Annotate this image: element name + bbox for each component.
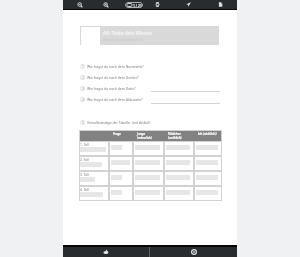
staticText: 4. Fall	[80, 187, 89, 191]
staticText: (männlich)	[137, 136, 152, 140]
staticText: Vervollständige der Tabelle. (mit Artike…	[87, 120, 151, 125]
staticText: Wie fragst du nach dem Nominativ?	[87, 64, 144, 69]
button[interactable]: Download	[63, 247, 149, 257]
button[interactable]: Page number	[123, 0, 145, 9]
staticText: 2	[82, 76, 84, 80]
staticText: 3. Fall	[80, 172, 89, 176]
button[interactable]: Share	[182, 0, 195, 9]
staticText: Wie fragst du nach dem Genitiv?	[87, 75, 139, 80]
staticText: 2. Fall	[80, 157, 89, 161]
staticText: Mädchen	[168, 132, 182, 136]
staticText: (weiblich)	[168, 136, 182, 140]
staticText: Deutsch Sprachwissen 5 / 6	[103, 38, 143, 42]
staticText: Wie fragst du nach dem Akkusativ?	[87, 97, 143, 102]
staticText: Frage	[113, 132, 121, 136]
staticText: Junge	[137, 132, 146, 136]
staticText: 1 / 25	[133, 3, 142, 8]
staticText: 4	[82, 98, 84, 102]
button[interactable]: Print	[151, 0, 164, 9]
button[interactable]: Info	[150, 247, 237, 257]
staticText: 5	[82, 121, 84, 125]
staticText: 1. Fall	[80, 142, 89, 146]
staticText: 3	[82, 87, 84, 91]
staticText: 1	[82, 65, 84, 69]
button[interactable]: Open document	[214, 0, 227, 9]
staticText: AB: Teste dein Wissen	[103, 30, 152, 37]
staticText: Ich (sächlich)	[198, 132, 217, 136]
staticText: Wie fragst du nach dem Dativ?	[87, 86, 136, 91]
button[interactable]: Zoom in	[99, 0, 112, 9]
button[interactable]: Zoom out	[73, 0, 86, 9]
